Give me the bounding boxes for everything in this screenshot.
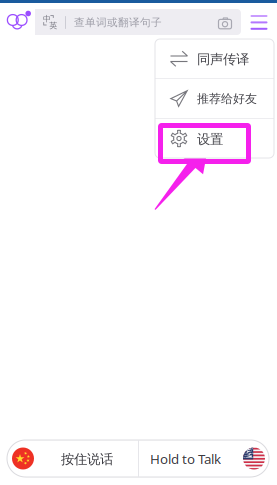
- staticText: 中: [43, 14, 51, 24]
- button[interactable]: 推荐给好友: [155, 79, 274, 118]
- staticText: 推荐给好友: [197, 91, 257, 106]
- button[interactable]: 按住说话: [7, 440, 138, 477]
- button[interactable]: App logo: [1, 10, 32, 30]
- staticText: 按住说话: [61, 451, 113, 467]
- staticText: 英: [49, 21, 57, 30]
- button[interactable]: 设置: [155, 119, 274, 158]
- staticText: 设置: [197, 131, 223, 147]
- staticText: Hold to Talk: [150, 450, 221, 468]
- staticText: 查单词或翻译句子: [74, 16, 162, 29]
- staticText: 同声传译: [197, 51, 249, 67]
- button[interactable]: Hold to Talk: [138, 440, 269, 477]
- button[interactable]: Camera search: [218, 17, 231, 29]
- button[interactable]: Menu: [250, 8, 267, 23]
- button[interactable]: Language: Chinese to English: [35, 9, 65, 35]
- button[interactable]: 同声传译: [155, 39, 274, 78]
